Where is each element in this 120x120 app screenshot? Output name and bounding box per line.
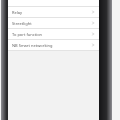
staticText: Streetlight (12, 21, 32, 26)
button[interactable]: NB Smart networking (8, 40, 99, 50)
button[interactable]: Streetlight (8, 18, 99, 28)
other: Open (91, 10, 95, 14)
other: Open (91, 43, 95, 47)
button[interactable]: To port function (8, 29, 99, 39)
button[interactable]: Relay (8, 7, 99, 17)
staticText: Relay (12, 10, 23, 15)
other: Open (91, 32, 95, 36)
staticText: NB Smart networking (12, 43, 53, 48)
other: Open (91, 21, 95, 25)
staticText: To port function (12, 32, 43, 37)
